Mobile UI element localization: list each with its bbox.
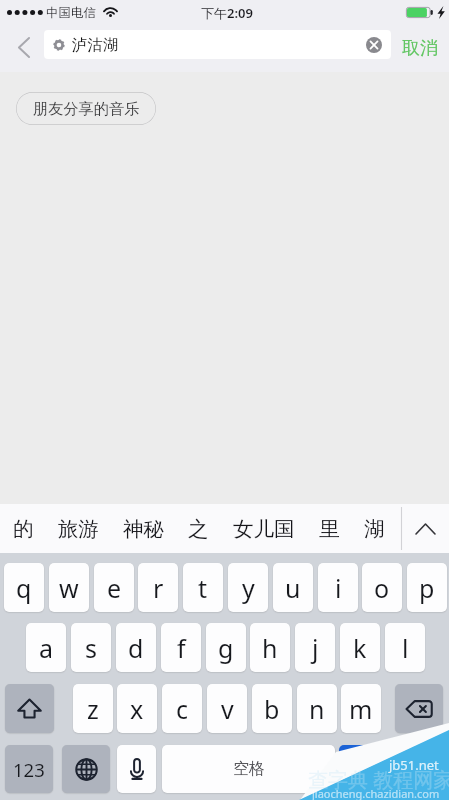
button[interactable]: z [73, 684, 113, 733]
button[interactable]: m [341, 684, 381, 733]
button[interactable]: Back [7, 25, 41, 72]
button[interactable]: r [138, 563, 178, 612]
staticText: 查字典 教程网家 [308, 766, 449, 793]
staticText: g [218, 631, 234, 665]
button[interactable]: p [407, 563, 447, 612]
button[interactable]: t [183, 563, 223, 612]
button[interactable]: 泸沽湖 [44, 30, 391, 59]
button[interactable]: v [207, 684, 247, 733]
staticText: w [59, 571, 79, 605]
button[interactable]: Shift [5, 684, 54, 733]
staticText: z [87, 692, 99, 726]
staticText: n [309, 692, 325, 726]
button[interactable]: f [161, 623, 201, 672]
staticText: 空格 [233, 759, 265, 779]
staticText: 旅游 [58, 516, 99, 542]
button[interactable]: e [94, 563, 134, 612]
staticText: 里 [319, 516, 340, 542]
staticText: i [335, 571, 342, 605]
button[interactable]: y [228, 563, 268, 612]
button[interactable]: u [273, 563, 313, 612]
button[interactable]: b [252, 684, 292, 733]
staticText: d [128, 631, 144, 665]
staticText: u [285, 571, 301, 605]
staticText: 湖 [364, 516, 385, 542]
button[interactable]: w [49, 563, 89, 612]
staticText: 的 [13, 516, 34, 542]
button[interactable]: x [117, 684, 157, 733]
staticText: 女儿国 [233, 516, 295, 542]
staticText: e [107, 571, 122, 605]
staticText: f [177, 631, 186, 665]
staticText: j [312, 631, 319, 665]
button[interactable]: Switch input language [62, 745, 110, 793]
button[interactable]: 湖 [364, 516, 385, 542]
button[interactable]: 搜索 [339, 745, 444, 793]
staticText: jiaocheng.chazidian.com [312, 786, 440, 800]
button[interactable]: a [26, 623, 66, 672]
staticText: m [349, 692, 373, 726]
button[interactable]: d [116, 623, 156, 672]
button[interactable]: 朋友分享的音乐 [16, 92, 156, 125]
staticText: q [16, 571, 32, 605]
button[interactable]: 的 [13, 516, 34, 542]
staticText: 取消 [402, 37, 438, 60]
staticText: 123 [13, 757, 45, 782]
button[interactable]: s [71, 623, 111, 672]
button[interactable]: 女儿国 [233, 516, 295, 542]
button[interactable]: 之 [188, 516, 209, 542]
button[interactable]: 取消 [393, 25, 447, 72]
button[interactable]: 旅游 [58, 516, 99, 542]
button[interactable]: Backspace [395, 684, 443, 733]
staticText: k [353, 631, 367, 665]
staticText: x [130, 692, 144, 726]
staticText: 搜索 [376, 759, 408, 779]
button[interactable]: 里 [319, 516, 340, 542]
button[interactable]: k [340, 623, 380, 672]
button[interactable]: 123 [5, 745, 53, 793]
staticText: r [153, 571, 164, 605]
staticText: v [221, 692, 234, 726]
button[interactable]: g [206, 623, 246, 672]
staticText: 神秘 [123, 516, 164, 542]
staticText: p [419, 571, 435, 605]
staticText: t [198, 571, 208, 605]
button[interactable]: j [295, 623, 335, 672]
staticText: b [264, 692, 280, 726]
staticText: 朋友分享的音乐 [33, 99, 140, 118]
button[interactable]: Clear text [363, 34, 385, 56]
staticText: y [242, 571, 255, 605]
staticText: jb51.net [389, 756, 439, 774]
staticText: 下午2:09 [201, 4, 253, 22]
button[interactable]: 神秘 [123, 516, 164, 542]
button[interactable]: 空格 [162, 745, 335, 793]
button[interactable]: l [385, 623, 425, 672]
staticText: a [39, 631, 54, 665]
staticText: s [85, 631, 97, 665]
button[interactable]: Voice input [117, 745, 156, 793]
staticText: 泸沽湖 [72, 35, 119, 55]
staticText: 之 [188, 516, 209, 542]
staticText: l [402, 631, 409, 665]
button[interactable]: q [4, 563, 44, 612]
button[interactable]: o [362, 563, 402, 612]
button[interactable]: c [162, 684, 202, 733]
button[interactable]: n [297, 684, 337, 733]
button[interactable]: h [250, 623, 290, 672]
button[interactable]: i [318, 563, 358, 612]
staticText: h [262, 631, 278, 665]
staticText: c [176, 692, 189, 726]
staticText: 中国电信 [46, 5, 96, 21]
staticText: o [374, 571, 390, 605]
button[interactable]: Hide keyboard [401, 504, 449, 553]
